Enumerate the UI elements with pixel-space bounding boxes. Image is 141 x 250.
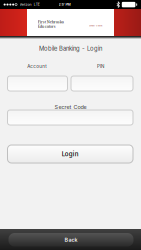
staticText: Back — [64, 236, 77, 243]
staticText: Educators — [38, 23, 56, 29]
button[interactable]: Secret Code — [7, 110, 133, 125]
staticText: PIN — [97, 64, 104, 69]
staticText: Account — [27, 64, 46, 69]
staticText: 2:17 PM — [58, 2, 70, 7]
button[interactable]: Login — [7, 145, 133, 163]
staticText: LTE — [34, 2, 40, 7]
staticText: Mobile Banking - Login — [39, 45, 102, 52]
button[interactable]: PIN — [71, 76, 133, 91]
staticText: First Nebraska — [38, 19, 64, 24]
staticText: Credit Union — [89, 24, 102, 27]
staticText: Verizon — [20, 2, 32, 7]
staticText: Secret Code — [54, 104, 86, 110]
button[interactable]: Back — [8, 233, 133, 246]
button[interactable]: Account — [7, 76, 67, 91]
staticText: Login — [62, 150, 79, 158]
